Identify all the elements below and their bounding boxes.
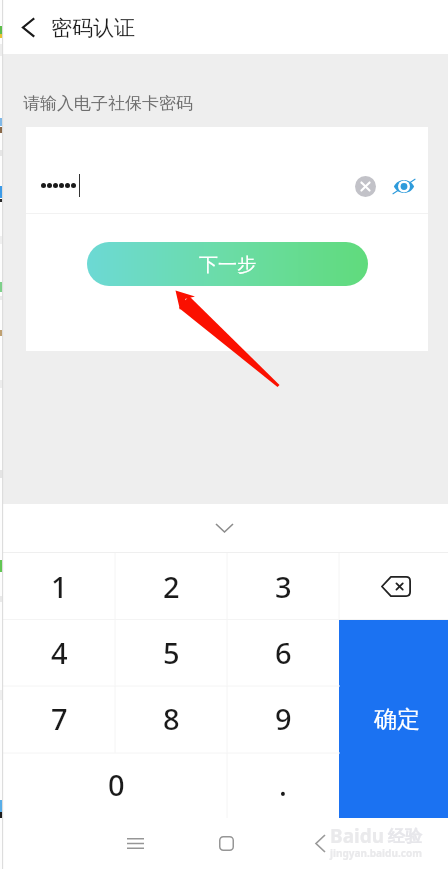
button[interactable]: 1 [3,553,115,619]
button[interactable]: 7 [3,685,115,751]
staticText: 2 [163,567,180,606]
button[interactable]: 5 [115,619,227,685]
button[interactable]: 确定 [339,620,448,818]
staticText: 4 [51,633,68,672]
button[interactable]: Home [198,818,254,869]
staticText: 确定 [374,705,420,734]
staticText: 下一步 [199,253,256,277]
button[interactable]: 3 [227,553,339,619]
staticText: jingyan.baidu.com [330,846,422,860]
staticText: 密码认证 [51,15,135,41]
button[interactable]: Recent apps [107,818,163,869]
staticText: 6 [275,633,292,672]
button[interactable]: Back [8,7,48,47]
button[interactable]: 2 [115,553,227,619]
button[interactable]: 8 [115,685,227,751]
staticText: 经验 [388,826,422,847]
button[interactable]: 6 [227,619,339,685]
button[interactable]: Clear text [349,170,381,202]
button[interactable]: Back [292,818,348,869]
button[interactable]: Delete [339,553,448,620]
staticText: 9 [275,699,292,738]
staticText: 3 [275,567,292,606]
staticText: . [279,765,287,804]
button[interactable]: . [227,751,339,818]
staticText: 0 [108,765,125,804]
button[interactable]: 4 [3,619,115,685]
staticText: 8 [163,699,180,738]
button[interactable]: 9 [227,685,339,751]
staticText: 7 [51,699,68,738]
staticText: Baidu [330,823,385,849]
staticText: 1 [51,567,68,606]
button[interactable]: 0 [0,751,227,818]
button[interactable]: Hide keyboard [0,504,448,552]
staticText: 请输入电子社保卡密码 [23,93,193,114]
staticText: 5 [163,633,180,672]
button[interactable]: Show password [388,170,420,202]
button[interactable]: 下一步 [87,242,368,286]
